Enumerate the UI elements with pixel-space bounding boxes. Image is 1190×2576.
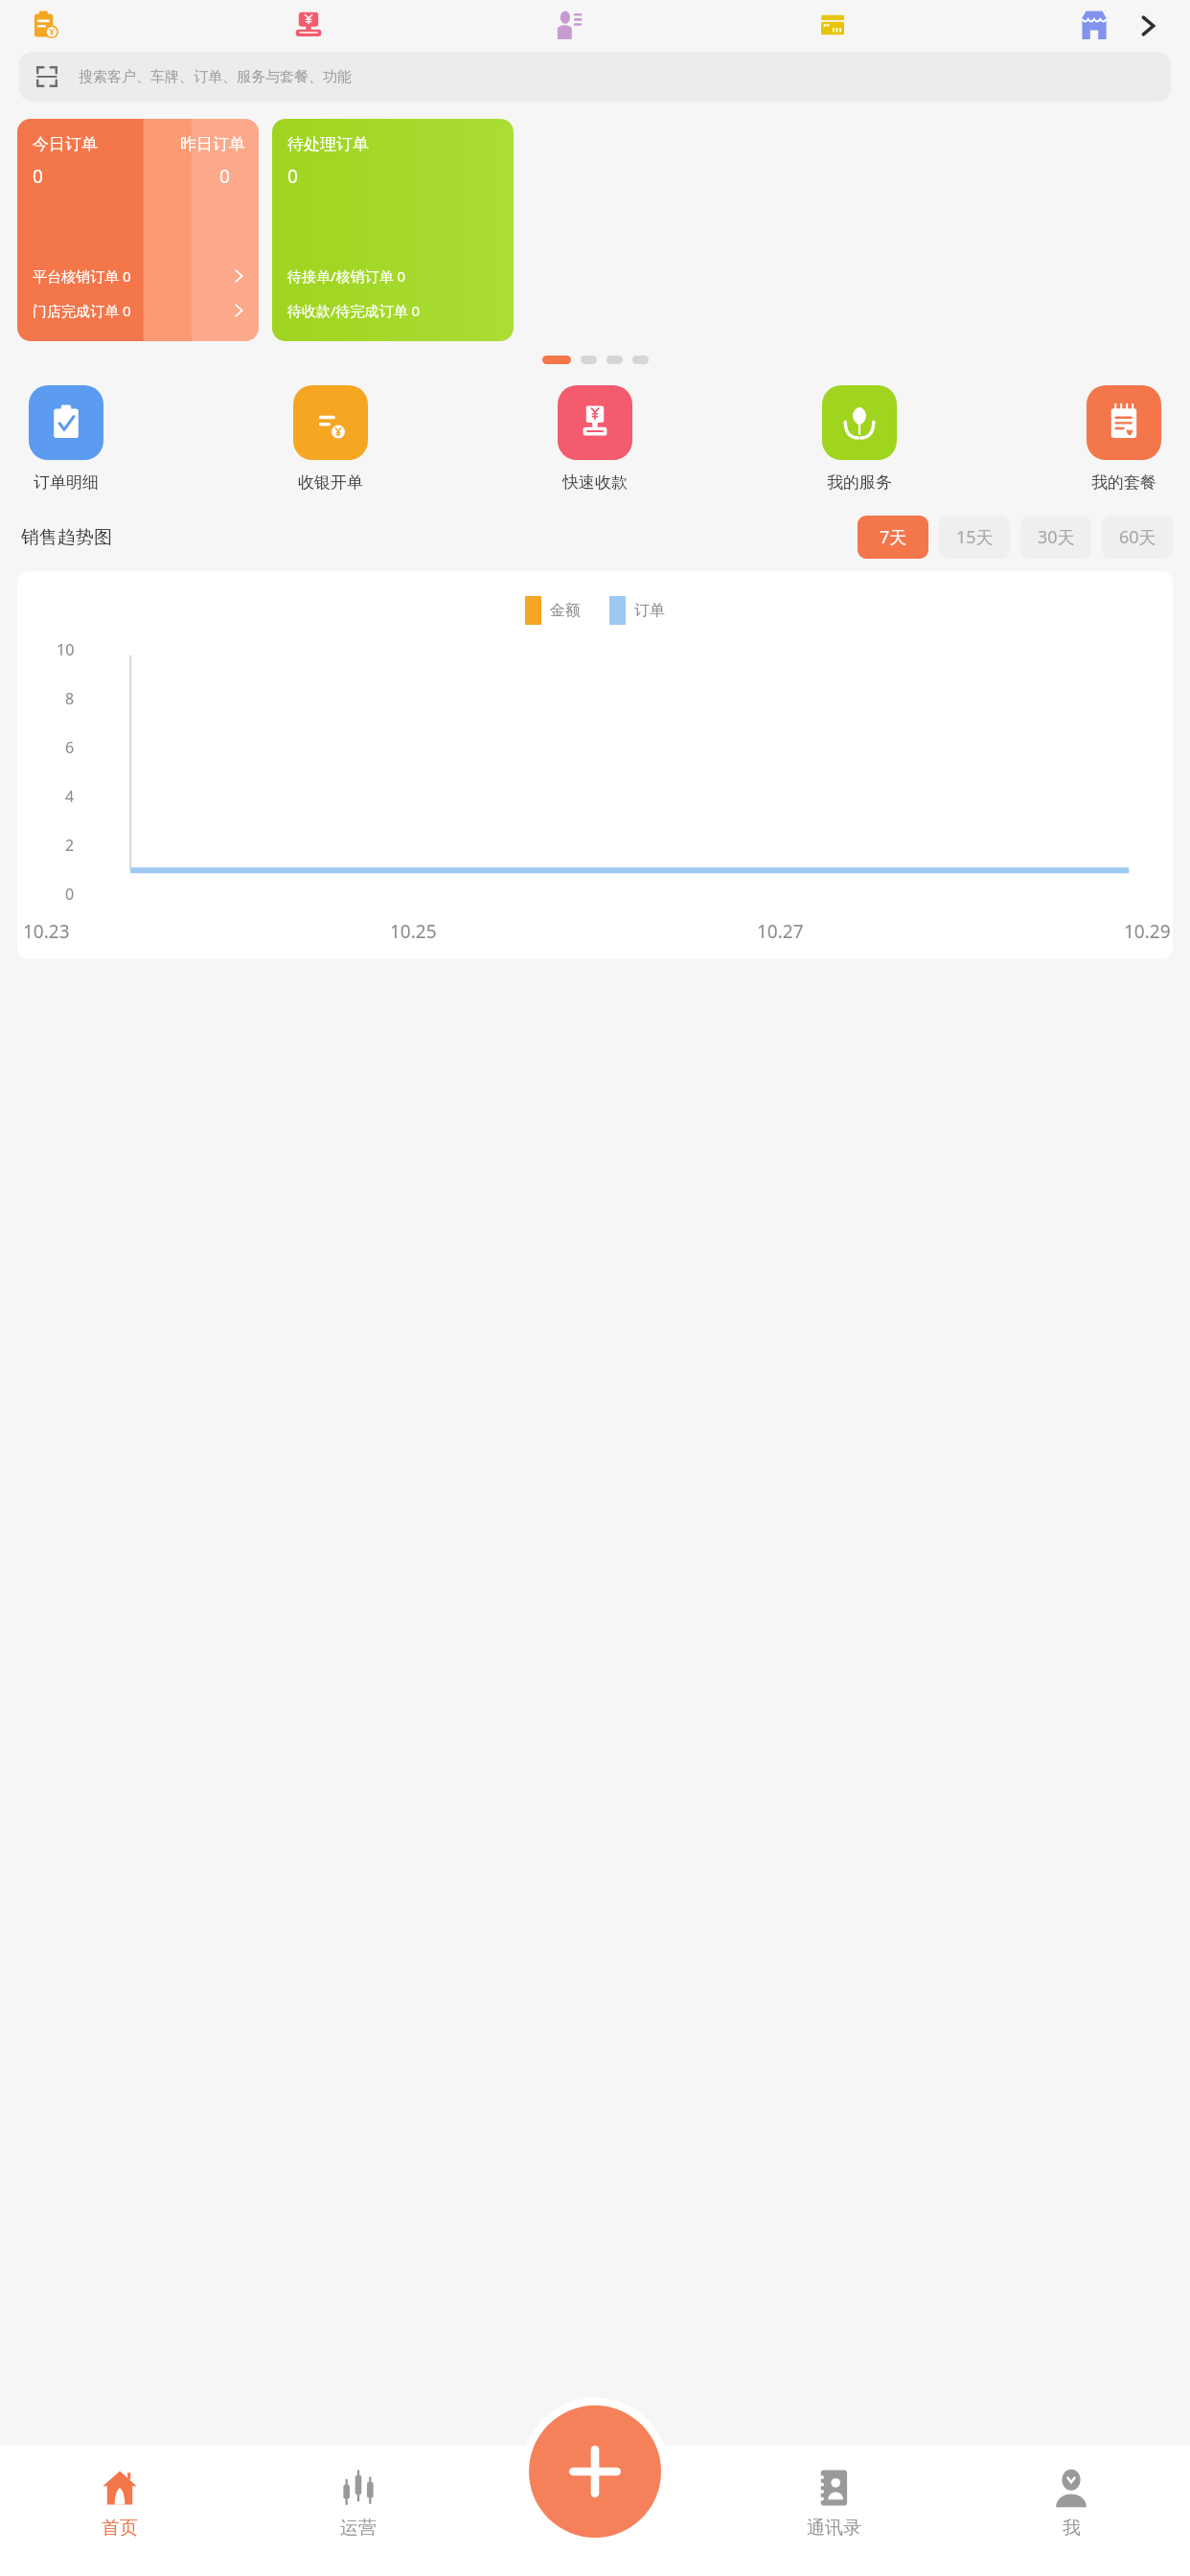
button[interactable]: 收银开单 [276,385,385,493]
button[interactable]: Cashier [284,0,333,50]
staticText: 30天 [1038,525,1075,549]
staticText: 待处理订单 [287,134,369,154]
button[interactable]: Store [1069,0,1119,50]
button[interactable]: Members [545,0,595,50]
button[interactable]: 搜索客户、车牌、订单、服务与套餐、功能 [19,52,1171,102]
staticText: 待收款/待完成订单 0 [287,301,421,320]
staticText: 15天 [956,525,994,549]
staticText: 金额 [550,601,581,620]
button[interactable]: 订单明细 [11,385,121,493]
staticText: 0 [219,164,230,189]
button[interactable]: 通讯录 [715,2446,952,2576]
button[interactable]: 首页 [0,2446,239,2576]
staticText: 订单明细 [34,472,99,493]
staticText: 订单 [634,601,665,620]
staticText: 0 [33,164,43,189]
button[interactable]: 运营 [239,2446,477,2576]
staticText: 门店完成订单 0 [33,301,131,320]
button[interactable]: Orders [21,0,71,50]
staticText: 7天 [880,525,907,549]
staticText: 销售趋势图 [21,526,112,549]
button[interactable]: 60天 [1102,516,1173,559]
staticText: 0 [287,164,298,189]
button[interactable]: 我的服务 [805,385,914,493]
staticText: 快速收款 [562,472,628,493]
staticText: 10.29 [1124,919,1171,944]
staticText: 收银开单 [298,472,363,493]
staticText: 6 [65,737,75,758]
button[interactable]: 15天 [939,516,1010,559]
staticText: 今日订单 [33,134,98,154]
button[interactable]: 30天 [1020,516,1091,559]
staticText: 4 [65,786,75,807]
staticText: 我的服务 [827,472,892,493]
staticText: 0 [65,884,75,905]
staticText: 通讯录 [807,2517,861,2540]
staticText: 搜索客户、车牌、订单、服务与套餐、功能 [79,68,352,86]
button[interactable]: 快速收款 [540,385,650,493]
staticText: 我 [1063,2517,1081,2540]
staticText: 8 [65,688,75,709]
staticText: 60天 [1119,525,1156,549]
staticText: 运营 [340,2517,377,2540]
button[interactable]: 我的套餐 [1069,385,1179,493]
staticText: 首页 [102,2517,138,2540]
button[interactable]: Add [529,2405,661,2538]
staticText: 待接单/核销订单 0 [287,266,406,286]
staticText: 平台核销订单 0 [33,266,131,286]
staticText: 昨日订单 [180,134,245,154]
staticText: 10.25 [390,919,437,944]
button[interactable]: 待处理订单 [272,119,514,341]
button[interactable]: 我 [952,2446,1190,2576]
staticText: 10 [57,639,75,660]
button[interactable]: 今日订单 [17,119,259,341]
button[interactable]: 7天 [858,516,928,559]
staticText: 我的套餐 [1091,472,1156,493]
button[interactable]: VIP card [808,0,858,50]
staticText: 10.23 [23,919,70,944]
button[interactable]: More [1121,0,1175,52]
staticText: 10.27 [757,919,804,944]
staticText: 2 [65,835,75,856]
